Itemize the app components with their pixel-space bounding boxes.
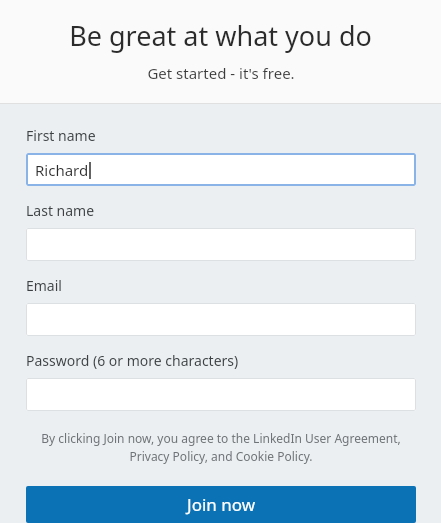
- button[interactable]: First name input: [26, 153, 416, 186]
- staticText: Join now: [187, 493, 256, 516]
- staticText: Richard: [35, 160, 89, 180]
- staticText: By clicking Join now, you agree to the L…: [26, 430, 416, 465]
- button[interactable]: Password input: [26, 378, 416, 411]
- staticText: Get started - it's free.: [147, 63, 295, 83]
- staticText: Email: [26, 276, 62, 295]
- staticText: Password (6 or more characters): [26, 351, 239, 370]
- button[interactable]: Join now: [26, 486, 416, 523]
- button[interactable]: Email input: [26, 303, 416, 336]
- staticText: Last name: [26, 201, 95, 220]
- staticText: First name: [26, 126, 96, 145]
- staticText: Be great at what you do: [69, 17, 372, 54]
- button[interactable]: Last name input: [26, 228, 416, 261]
